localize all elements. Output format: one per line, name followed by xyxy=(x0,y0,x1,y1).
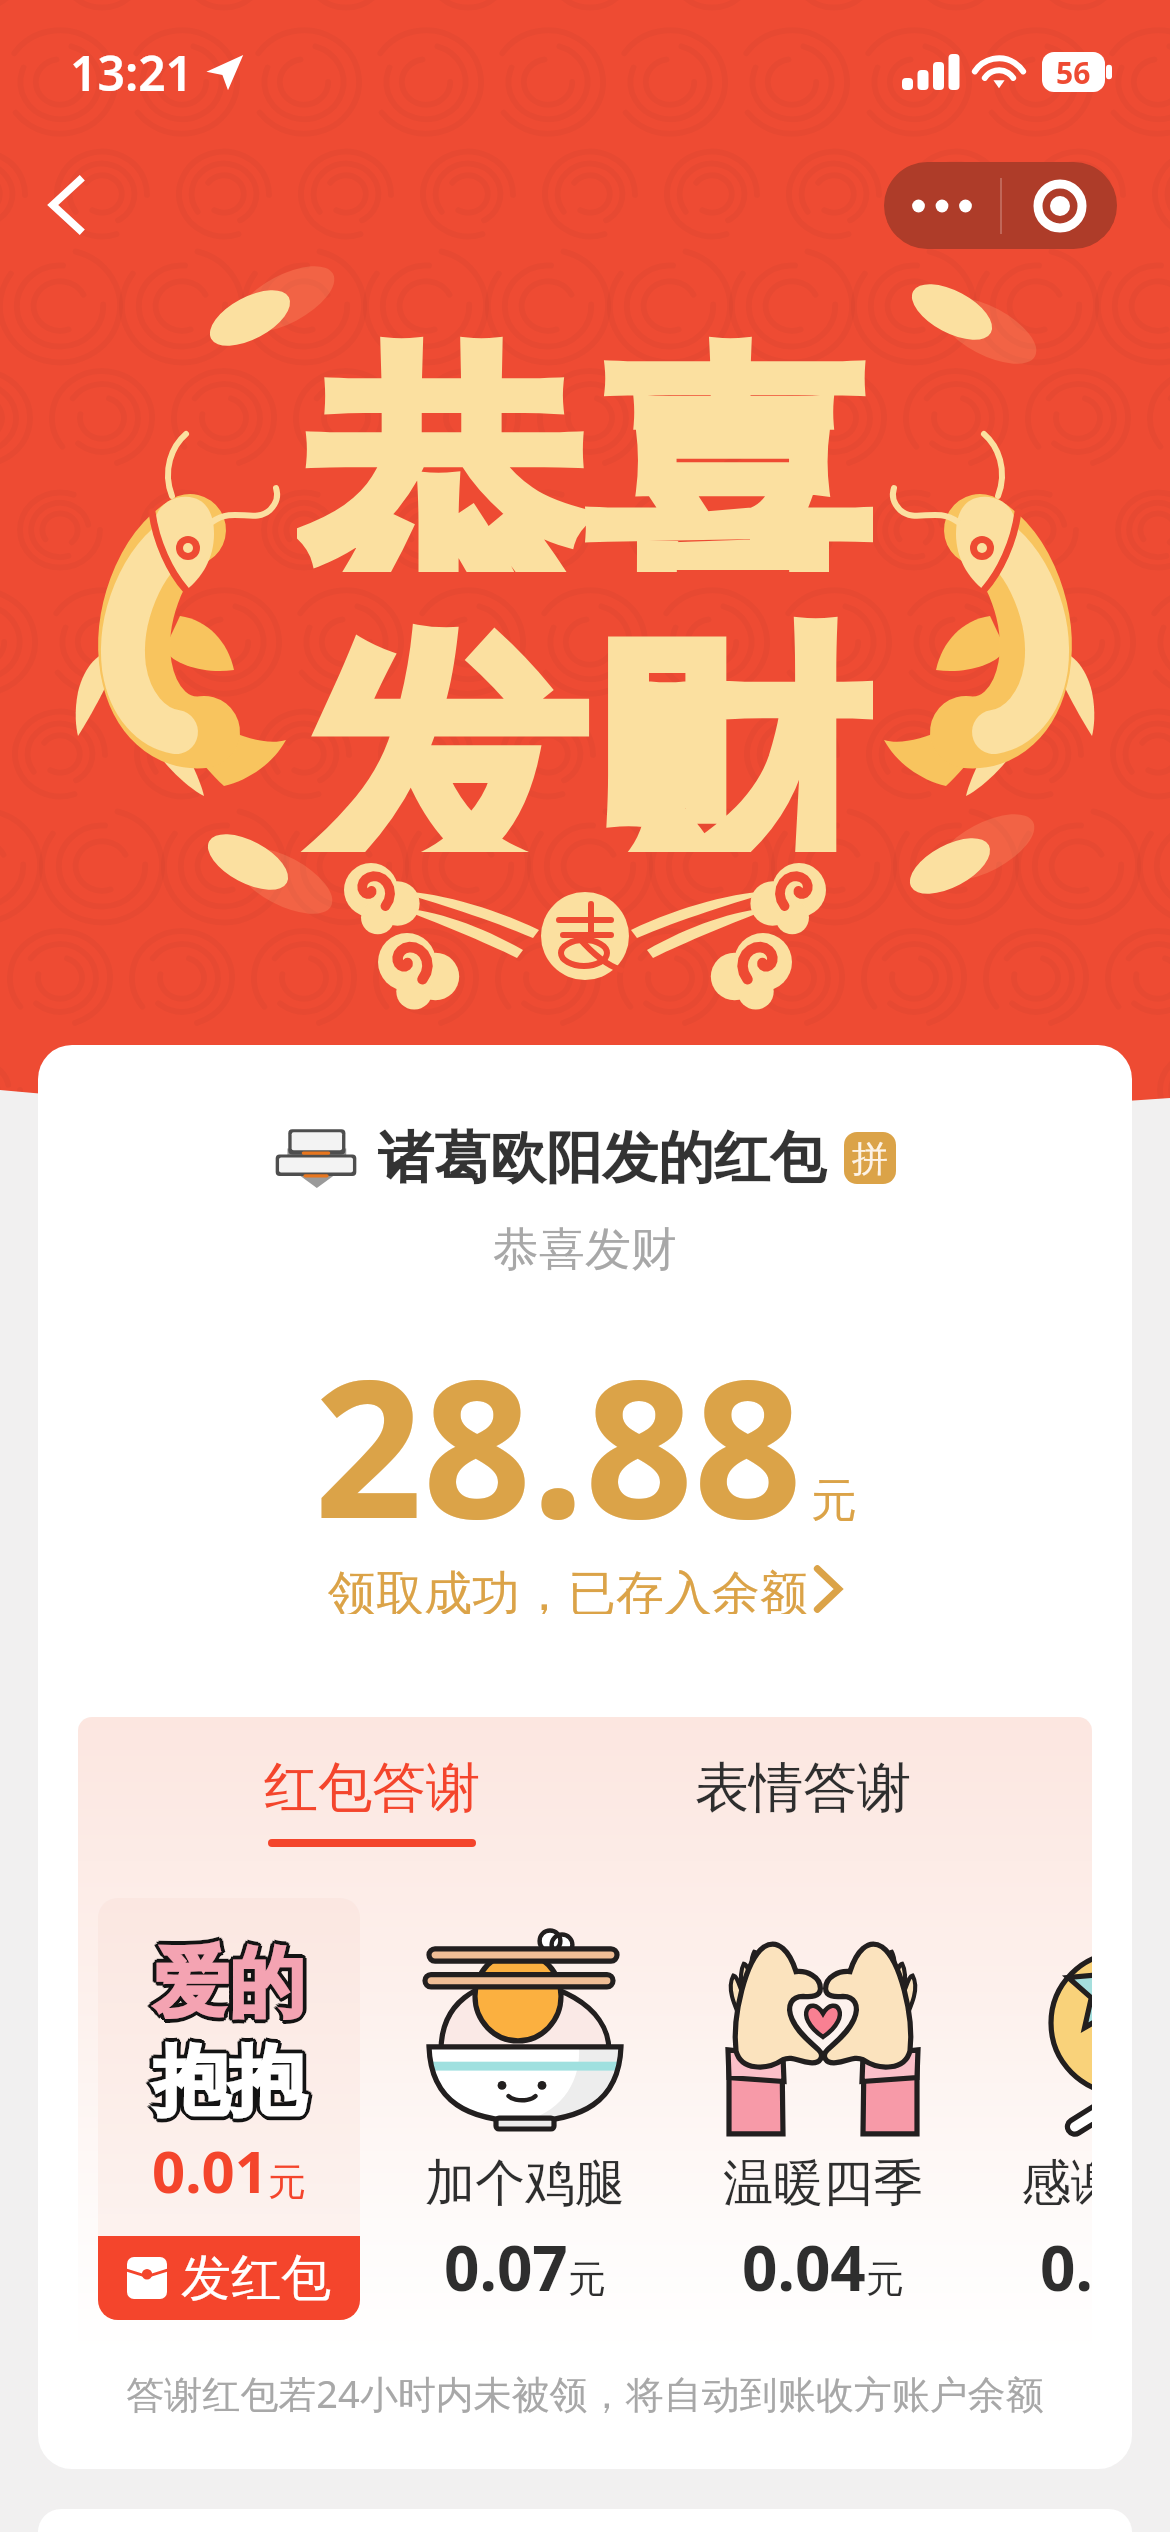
staticText: 抱抱 xyxy=(150,2033,302,2129)
staticText: 元 xyxy=(866,2255,904,2303)
staticText: 爱的 xyxy=(155,1939,307,2035)
staticText: 0.01 xyxy=(152,2131,268,2210)
staticText: 爱的 xyxy=(156,1934,308,2030)
staticText: 爱的 xyxy=(156,1937,308,2033)
staticText: 感谢有你 xyxy=(1021,2152,1092,2215)
staticText: 抱抱 xyxy=(157,2034,309,2130)
staticText: 抱抱 xyxy=(155,2031,307,2127)
staticText: 发红包 xyxy=(181,2247,331,2310)
staticText: 爱的 xyxy=(152,1939,304,2035)
button[interactable]: 爱的 xyxy=(98,1898,360,2320)
staticText: 抱抱 xyxy=(153,2034,305,2130)
staticText: 13:21 xyxy=(70,40,194,105)
staticText: 爱的 xyxy=(149,1936,301,2032)
staticText: 抱抱 xyxy=(153,2030,305,2126)
staticText: 元 xyxy=(268,2158,306,2206)
staticText: 抱抱 xyxy=(150,2035,302,2131)
staticText: 抱抱 xyxy=(153,2038,305,2134)
staticText: 28.88 xyxy=(314,1315,803,1574)
staticText: 56 xyxy=(1056,52,1091,92)
staticText: 爱的 xyxy=(150,1937,302,2033)
staticText: 0.09 xyxy=(1040,2225,1092,2309)
button[interactable]: 表情答谢 xyxy=(695,1754,911,1822)
staticText: 领取成功，已存入余额 xyxy=(328,1564,808,1614)
button[interactable]: 感谢有你 xyxy=(1021,1932,1092,2309)
staticText: 加个鸡腿 xyxy=(425,2152,625,2215)
button[interactable]: 加个鸡腿 xyxy=(425,1932,625,2309)
staticText: 爱的 xyxy=(153,1936,305,2032)
staticText: 爱的 xyxy=(155,1933,307,2029)
staticText: 诸葛欧阳发的红包 xyxy=(378,1123,826,1194)
staticText: 温暖四季 xyxy=(723,2152,923,2215)
staticText: 恭喜 xyxy=(297,314,873,572)
staticText: 拼 xyxy=(852,1136,888,1181)
staticText: 答谢红包若24小时内未被领，将自动到账收方账户余额 xyxy=(38,2367,1132,2419)
staticText: 抱抱 xyxy=(155,2037,307,2133)
staticText: 恭喜发财 xyxy=(38,1221,1132,1279)
staticText: 爱的 xyxy=(150,1935,302,2031)
staticText: 爱的 xyxy=(157,1936,309,2032)
staticText: 爱的 xyxy=(153,1940,305,2036)
staticText: 元 xyxy=(811,1472,857,1530)
staticText: 抱抱 xyxy=(156,2035,308,2131)
staticText: 0.04 xyxy=(742,2225,866,2309)
button[interactable]: More options xyxy=(884,162,1000,249)
button[interactable]: 红包答谢 xyxy=(264,1754,480,1822)
button[interactable]: 温暖四季 xyxy=(723,1932,923,2309)
button[interactable]: Close mini program xyxy=(1002,162,1117,249)
staticText: 抱抱 xyxy=(152,2037,304,2133)
staticText: 抱抱 xyxy=(151,2031,303,2127)
staticText: 0.07 xyxy=(444,2225,568,2309)
button[interactable]: Back xyxy=(22,160,112,250)
staticText: 抱抱 xyxy=(156,2032,308,2128)
staticText: 爱的 xyxy=(151,1933,303,2029)
staticText: 发财 xyxy=(297,594,873,852)
staticText: 抱抱 xyxy=(149,2034,301,2130)
staticText: 元 xyxy=(568,2255,606,2303)
staticText: 爱的 xyxy=(153,1932,305,2028)
button[interactable]: 领取成功，已存入余额 xyxy=(38,1564,1132,1614)
